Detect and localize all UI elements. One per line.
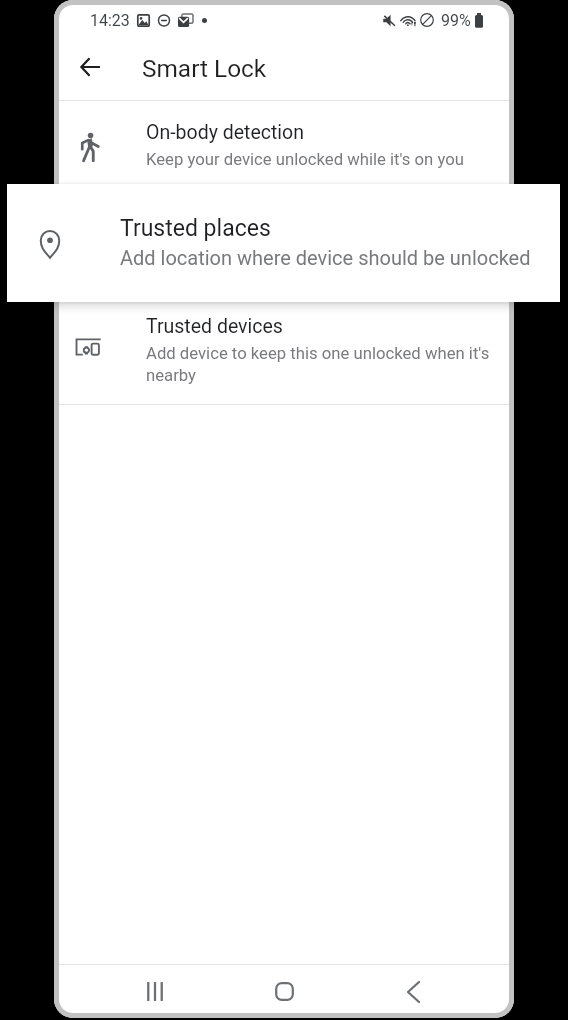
button[interactable]: Back	[66, 45, 114, 93]
staticText: Smart Lock	[142, 54, 267, 83]
staticText: 14:23	[90, 11, 130, 30]
staticText: Trusted devices	[146, 315, 283, 338]
staticText: On-body detection	[146, 121, 304, 144]
staticText: Trusted places	[120, 215, 271, 242]
button[interactable]: On-body detection	[54, 101, 514, 186]
button[interactable]: Trusted places	[7, 184, 560, 302]
button[interactable]: Back	[385, 965, 441, 1018]
button[interactable]: Trusted devices	[54, 294, 514, 404]
staticText: Add device to keep this one unlocked whe…	[146, 344, 494, 385]
staticText: Add location where device should be unlo…	[120, 246, 531, 269]
button[interactable]: Home	[256, 965, 312, 1018]
staticText: Keep your device unlocked while it's on …	[146, 150, 464, 170]
button[interactable]: Recent apps	[127, 965, 183, 1018]
staticText: 99%	[441, 11, 471, 30]
